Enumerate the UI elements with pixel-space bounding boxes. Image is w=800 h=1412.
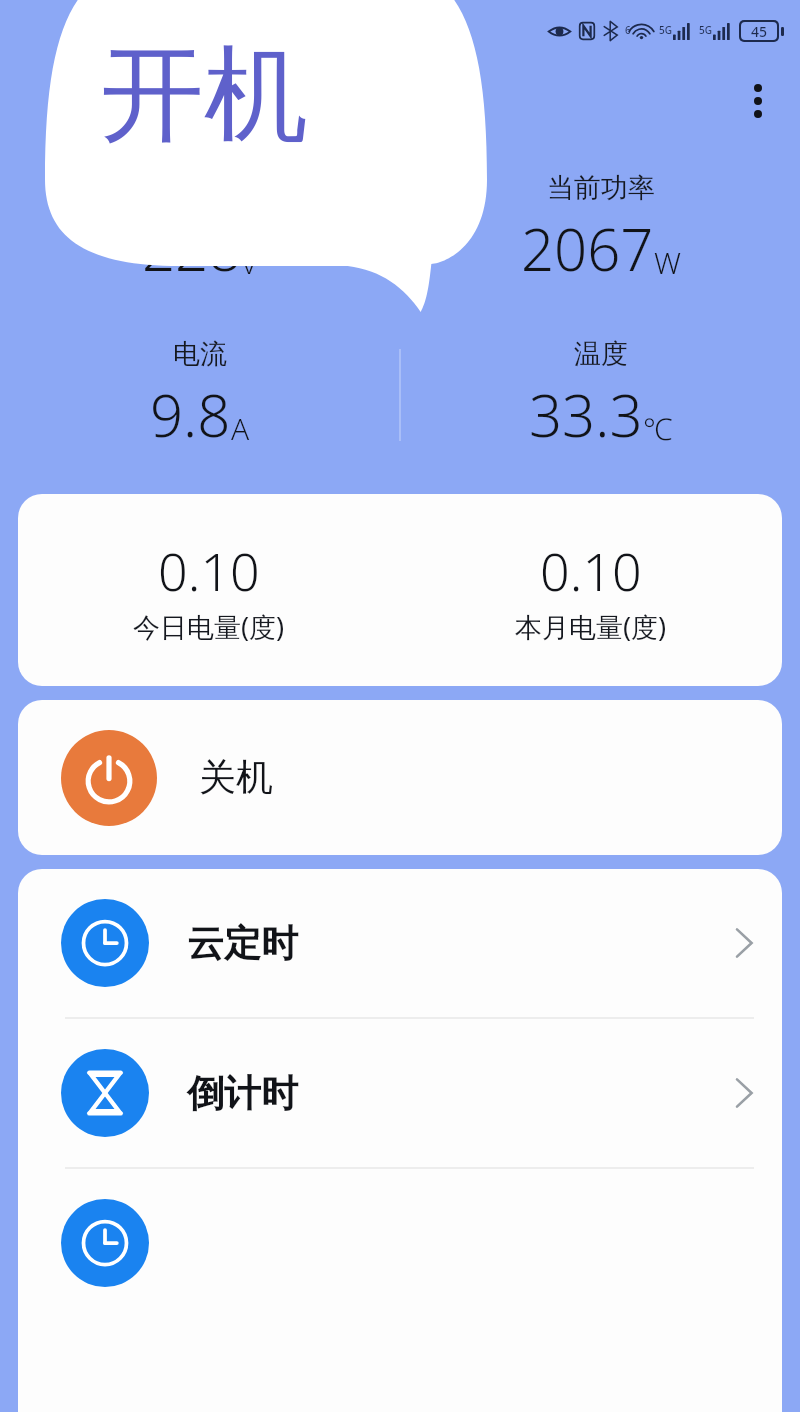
staticText: 开机	[100, 30, 308, 161]
button[interactable]: More options	[730, 73, 786, 129]
staticText: v	[242, 242, 257, 283]
staticText: 6	[625, 23, 631, 37]
staticText: 9.8	[150, 375, 231, 454]
staticText: 本月电量(度)	[515, 608, 667, 645]
staticText: 倒计时	[187, 1070, 298, 1117]
staticText: 关机	[199, 754, 273, 801]
staticText: 今日电量(度)	[133, 608, 285, 645]
button[interactable]	[18, 1169, 782, 1317]
staticText: 温度	[574, 337, 628, 371]
staticText: 0.10	[540, 535, 642, 606]
button[interactable]: 倒计时	[18, 1019, 782, 1167]
staticText: 33.3	[529, 375, 643, 454]
staticText: 228	[142, 209, 242, 288]
button[interactable]: 0.10	[18, 494, 782, 686]
staticText: ℃	[643, 408, 673, 449]
button[interactable]: 关机	[18, 700, 782, 855]
staticText: W	[654, 242, 681, 283]
button[interactable]: 云定时	[18, 869, 782, 1017]
staticText: 电流	[173, 337, 227, 371]
staticText: 2067	[521, 209, 654, 288]
staticText: 云定时	[187, 920, 298, 967]
staticText: 5G	[699, 23, 712, 37]
staticText: 0.10	[158, 535, 260, 606]
staticText: 当前功率	[547, 171, 655, 205]
staticText: 45	[751, 22, 768, 40]
staticText: A	[231, 408, 250, 449]
staticText: 5G	[659, 23, 672, 37]
